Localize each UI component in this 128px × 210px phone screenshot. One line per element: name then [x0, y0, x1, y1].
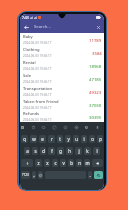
staticText: s — [34, 148, 37, 154]
button[interactable]: ?123 — [21, 171, 30, 179]
staticText: Sale — [23, 73, 32, 79]
button[interactable]: Keyboard options — [20, 125, 25, 130]
staticText: r — [51, 136, 53, 142]
button[interactable]: k — [84, 147, 91, 155]
staticText: a — [26, 148, 29, 154]
staticText: l — [96, 148, 98, 154]
staticText: z — [37, 160, 40, 166]
button[interactable]: o — [89, 135, 95, 143]
button[interactable]: Themes — [84, 125, 89, 130]
staticText: y — [67, 136, 70, 142]
staticText: 2024-06-03 19:36:17 — [23, 118, 52, 122]
button[interactable]: Voice input — [95, 125, 100, 130]
staticText: p — [99, 136, 102, 142]
button[interactable]: w — [30, 135, 37, 143]
staticText: 7:43 — [22, 15, 29, 20]
button[interactable]: b — [68, 159, 74, 167]
staticText: g — [59, 148, 62, 154]
button[interactable]: Refunds — [20, 111, 104, 122]
staticText: j — [78, 148, 80, 154]
button[interactable]: GIF — [41, 125, 46, 130]
button[interactable]: p — [97, 135, 103, 143]
staticText: v — [62, 160, 65, 166]
button[interactable]: Rental — [20, 59, 104, 72]
staticText: o — [91, 136, 94, 142]
button[interactable]: l — [93, 147, 100, 155]
staticText: i — [83, 136, 85, 142]
staticText: ?123 — [22, 173, 29, 177]
staticText: n — [78, 160, 81, 166]
staticText: Rental — [23, 60, 36, 66]
button[interactable]: Emoji — [63, 125, 68, 130]
button[interactable]: Clear search — [95, 21, 102, 33]
staticText: Taken from Friend — [23, 99, 59, 105]
button[interactable]: Back — [23, 21, 30, 33]
button[interactable]: Key — [92, 159, 103, 167]
button[interactable]: Sale — [20, 72, 104, 85]
staticText: 2024-06-03 19:36:17 — [23, 80, 52, 84]
button[interactable]: Transportation — [20, 85, 104, 98]
button[interactable]: u — [73, 135, 79, 143]
button[interactable]: Key — [94, 171, 103, 179]
button[interactable]: d — [40, 147, 46, 155]
staticText: 49323 — [89, 89, 102, 95]
button[interactable]: Clipboard — [31, 125, 36, 130]
button[interactable]: f — [48, 147, 55, 155]
button[interactable]: Settings — [74, 125, 79, 130]
button[interactable]: q — [21, 135, 28, 143]
staticText: 30395 — [89, 114, 102, 120]
staticText: m — [85, 160, 90, 166]
button[interactable]: j — [75, 147, 82, 155]
button[interactable]: Clothing — [20, 46, 104, 59]
button[interactable]: Baby — [20, 33, 104, 46]
button[interactable]: m — [84, 159, 90, 167]
staticText: h — [68, 148, 71, 154]
staticText: . — [89, 172, 91, 178]
staticText: 3584 — [92, 50, 102, 56]
staticText: q — [23, 136, 26, 142]
staticText: f — [51, 148, 53, 154]
staticText: 47185 — [89, 76, 102, 82]
staticText: u — [75, 136, 78, 142]
button[interactable]: h — [66, 147, 73, 155]
staticText: 18968 — [89, 63, 102, 69]
button[interactable]: a — [24, 147, 30, 155]
button[interactable]: e — [39, 135, 46, 143]
staticText: Refunds — [23, 111, 40, 117]
button[interactable]: n — [76, 159, 82, 167]
staticText: b — [70, 160, 73, 166]
staticText: c — [54, 160, 57, 166]
staticText: d — [42, 148, 45, 154]
staticText: t — [59, 136, 61, 142]
staticText: Baby — [23, 34, 33, 40]
button[interactable]: Key — [21, 159, 33, 167]
button[interactable]: v — [60, 159, 66, 167]
staticText: x — [46, 160, 49, 166]
button[interactable]: Stickers — [52, 125, 57, 130]
button[interactable]: Key — [38, 171, 43, 179]
button[interactable]: c — [52, 159, 58, 167]
staticText: 37030 — [89, 102, 102, 108]
button[interactable]: z — [35, 159, 42, 167]
button[interactable]: y — [65, 135, 71, 143]
staticText: 2024-06-03 19:36:17 — [23, 41, 52, 45]
button[interactable]: , — [32, 171, 36, 179]
button[interactable]: r — [48, 135, 55, 143]
staticText: 2024-06-03 19:36:17 — [23, 54, 52, 58]
button[interactable]: g — [57, 147, 64, 155]
button[interactable]: . — [88, 171, 92, 179]
button[interactable]: s — [32, 147, 38, 155]
button[interactable]: x — [44, 159, 50, 167]
staticText: k — [86, 148, 89, 154]
staticText: e — [41, 136, 44, 142]
staticText: 2024-06-03 19:36:17 — [23, 106, 52, 110]
staticText: Transportation — [23, 86, 53, 92]
staticText: Clothing — [23, 47, 40, 53]
button[interactable]: i — [81, 135, 87, 143]
staticText: 2024-06-03 19:36:17 — [23, 93, 52, 97]
button[interactable]: Taken from Friend — [20, 98, 104, 111]
staticText: 2024-06-03 19:36:17 — [23, 67, 52, 71]
staticText: , — [33, 172, 35, 178]
button[interactable]: t — [57, 135, 63, 143]
